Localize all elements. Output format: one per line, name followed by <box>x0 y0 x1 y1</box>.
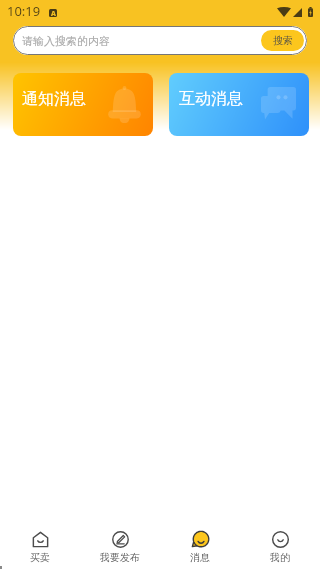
staticText: 消息 <box>190 551 210 564</box>
staticText: A <box>51 9 56 17</box>
staticText: 买卖 <box>30 551 50 564</box>
button[interactable]: 互动消息 <box>169 73 309 136</box>
button[interactable]: 我要发布 <box>80 515 160 569</box>
button[interactable]: 消息 <box>160 515 240 569</box>
staticText: 通知消息 <box>22 89 86 109</box>
button[interactable]: 通知消息 <box>13 73 153 136</box>
button[interactable]: 买卖 <box>0 515 80 569</box>
staticText: 我的 <box>270 551 290 564</box>
button[interactable]: 我的 <box>240 515 320 569</box>
staticText: 10:19 <box>7 2 41 20</box>
staticText: 互动消息 <box>179 89 243 109</box>
button[interactable]: 请输入搜索的内容 <box>13 26 307 55</box>
button[interactable]: 搜索 <box>261 30 304 51</box>
staticText: 我要发布 <box>100 551 140 564</box>
staticText: 搜索 <box>273 34 293 47</box>
staticText: 请输入搜索的内容 <box>22 34 110 48</box>
